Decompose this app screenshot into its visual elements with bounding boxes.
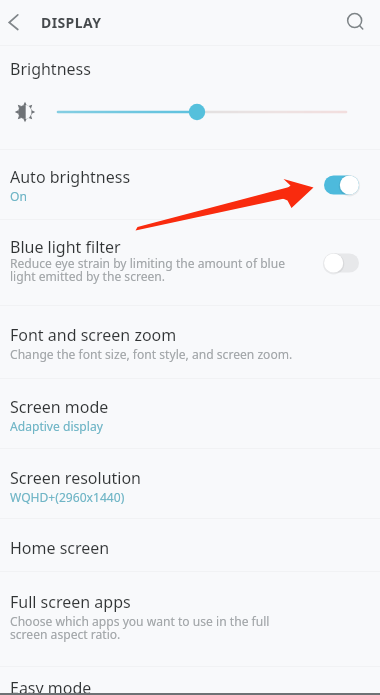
button[interactable]: Easy mode (0, 667, 380, 695)
button[interactable]: Home screen (0, 519, 380, 571)
button[interactable]: Font and screen zoom (0, 306, 380, 378)
button[interactable]: Search (340, 9, 368, 37)
staticText: Brightness (10, 58, 91, 80)
staticText: Home screen (10, 537, 110, 559)
staticText: Adaptive display (10, 418, 103, 434)
button[interactable]: Full screen apps (0, 572, 380, 666)
staticText: Auto brightness (10, 166, 131, 188)
button[interactable]: Screen mode (0, 379, 380, 448)
staticText: WQHD+(2960x1440) (10, 489, 125, 505)
staticText: Easy mode (10, 677, 92, 695)
button[interactable]: Screen resolution (0, 449, 380, 518)
staticText: Font and screen zoom (10, 324, 177, 346)
staticText: Full screen apps (10, 591, 131, 613)
staticText: DISPLAY (41, 13, 102, 32)
button[interactable]: Switch off (324, 249, 359, 277)
staticText: Change the font size, font style, and sc… (10, 346, 293, 362)
staticText: Choose which apps you want to use in the… (10, 613, 270, 642)
staticText: Screen resolution (10, 467, 141, 489)
staticText: On (10, 188, 27, 204)
button[interactable]: Blue light filter (0, 220, 380, 305)
staticText: Reduce eye strain by limiting the amount… (10, 255, 286, 284)
button[interactable]: Switch on (324, 171, 359, 199)
button[interactable]: Auto brightness (0, 150, 380, 219)
button[interactable]: Back (1, 10, 27, 36)
staticText: Screen mode (10, 396, 109, 418)
staticText: Blue light filter (10, 236, 121, 258)
